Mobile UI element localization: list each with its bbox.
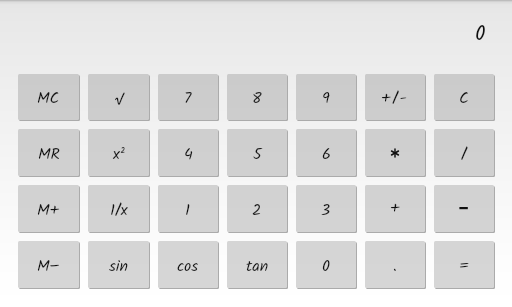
staticText: 6	[322, 142, 331, 168]
button[interactable]: sin	[88, 241, 149, 288]
staticText: cos	[177, 254, 199, 280]
staticText: 7	[184, 86, 192, 112]
button[interactable]: x²	[88, 129, 149, 176]
button[interactable]: tan	[227, 241, 287, 288]
staticText: .	[393, 254, 397, 280]
button[interactable]: +/-	[365, 74, 425, 120]
staticText: +	[390, 196, 400, 222]
button[interactable]: 8	[227, 74, 287, 120]
button[interactable]: 7	[158, 74, 218, 120]
button[interactable]: Multiply	[365, 129, 425, 176]
button[interactable]: M+	[18, 185, 79, 232]
staticText: 0	[322, 254, 331, 280]
button[interactable]: 0	[296, 241, 356, 288]
button[interactable]: 4	[158, 129, 218, 176]
staticText: M−	[37, 254, 60, 280]
button[interactable]: MR	[18, 129, 79, 176]
staticText: 5	[253, 142, 262, 168]
staticText: x²	[113, 142, 125, 168]
button[interactable]: /	[434, 129, 494, 176]
staticText: 3	[321, 198, 331, 224]
button[interactable]: 1	[158, 185, 218, 232]
staticText: M+	[37, 198, 60, 224]
button[interactable]: 9	[296, 74, 356, 120]
staticText: 1	[185, 198, 191, 224]
staticText: +/-	[381, 86, 409, 112]
button[interactable]: 6	[296, 129, 356, 176]
staticText: √	[114, 86, 123, 112]
button[interactable]: M−	[18, 241, 79, 288]
button[interactable]: C	[434, 74, 494, 120]
button[interactable]: 5	[227, 129, 287, 176]
staticText: /	[461, 142, 467, 168]
staticText: tan	[246, 254, 269, 280]
staticText: 2	[252, 198, 262, 224]
button[interactable]: .	[365, 241, 425, 288]
button[interactable]: MC	[18, 74, 79, 120]
button[interactable]: 3	[296, 185, 356, 232]
staticText: 4	[184, 142, 193, 168]
staticText: 9	[322, 86, 330, 112]
button[interactable]: Subtract	[434, 185, 494, 232]
staticText: 1/x	[110, 198, 128, 224]
button[interactable]: 1/x	[88, 185, 149, 232]
staticText: MC	[37, 86, 60, 112]
staticText: C	[459, 86, 469, 112]
staticText: 0	[475, 18, 486, 51]
button[interactable]: 2	[227, 185, 287, 232]
button[interactable]: cos	[158, 241, 218, 288]
button[interactable]: =	[434, 241, 494, 288]
staticText: sin	[109, 254, 129, 280]
staticText: 8	[252, 86, 262, 112]
staticText: =	[459, 254, 470, 280]
staticText: MR	[38, 142, 60, 168]
button[interactable]: +	[365, 185, 425, 232]
button[interactable]: √	[88, 74, 149, 120]
